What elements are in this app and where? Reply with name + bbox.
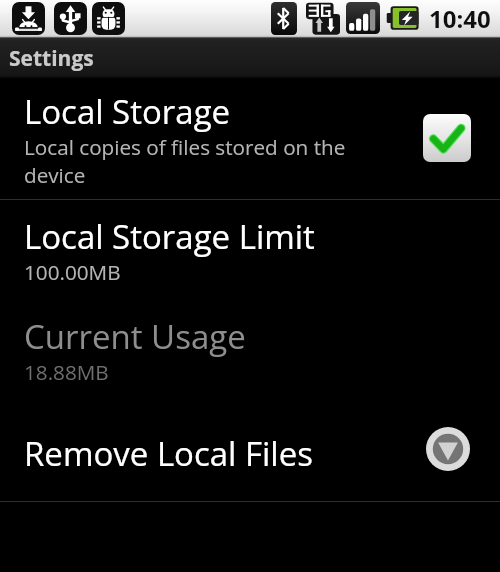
staticText: Local Storage	[24, 89, 231, 134]
button[interactable]: Expand Remove Local Files	[426, 427, 470, 471]
staticText: Local copies of files stored on the devi…	[24, 133, 356, 189]
button[interactable]: Local Storage	[0, 78, 500, 199]
button[interactable]: Local Storage enabled	[423, 114, 471, 162]
staticText: Local Storage Limit	[24, 214, 315, 259]
staticText: 18.88MB	[24, 358, 109, 386]
staticText: Current Usage	[24, 314, 246, 359]
button[interactable]: Remove Local Files	[0, 401, 500, 501]
button[interactable]: Local Storage Limit	[0, 200, 500, 301]
staticText: Remove Local Files	[24, 431, 313, 476]
staticText: 100.00MB	[24, 258, 121, 286]
staticText: Settings	[9, 44, 94, 73]
staticText: 10:40	[429, 2, 491, 35]
